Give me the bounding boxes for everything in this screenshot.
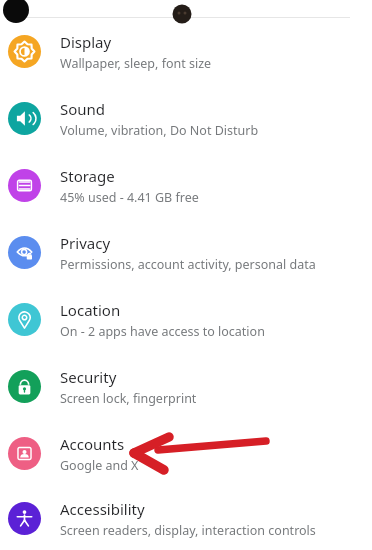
staticText: Sound <box>60 99 106 119</box>
staticText: Wallpaper, sleep, font size <box>60 55 212 72</box>
button[interactable]: Storage <box>0 152 372 219</box>
staticText: Display <box>60 32 112 52</box>
button[interactable]: Search settings <box>14 0 356 18</box>
button[interactable]: Privacy <box>0 219 372 286</box>
button[interactable]: Security <box>0 353 372 420</box>
staticText: 45% used - 4.41 GB free <box>60 189 199 206</box>
staticText: Permissions, account activity, personal … <box>60 256 316 273</box>
staticText: Accounts <box>60 434 125 454</box>
staticText: Volume, vibration, Do Not Disturb <box>60 122 259 139</box>
staticText: Google and X <box>60 457 139 474</box>
staticText: Location <box>60 300 121 320</box>
button[interactable]: Accounts <box>0 420 372 487</box>
staticText: Accessibility <box>60 499 145 519</box>
button[interactable]: Location <box>0 286 372 353</box>
staticText: Storage <box>60 166 115 186</box>
staticText: Screen lock, fingerprint <box>60 390 197 407</box>
button[interactable]: Sound <box>0 85 372 152</box>
button[interactable]: Display <box>0 18 372 85</box>
staticText: Screen readers, display, interaction con… <box>60 522 316 539</box>
other: Red arrow pointing to Accounts <box>0 0 372 550</box>
button[interactable]: Accessibility <box>0 487 372 550</box>
staticText: Privacy <box>60 233 111 253</box>
staticText: Security <box>60 367 117 387</box>
staticText: On - 2 apps have access to location <box>60 323 265 340</box>
